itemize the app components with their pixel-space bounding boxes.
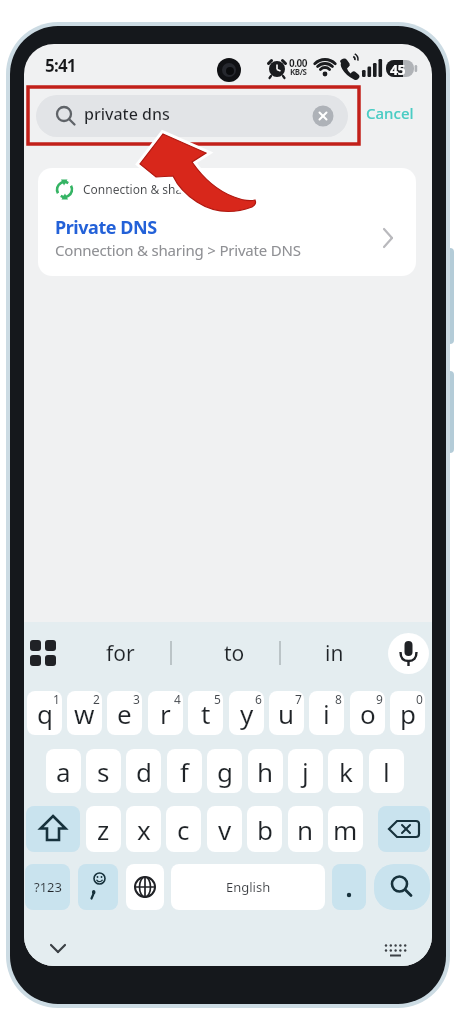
- staticText: Connection & sharing: [83, 181, 206, 197]
- staticText: KB/S: [290, 66, 307, 77]
- button[interactable]: s: [86, 749, 121, 793]
- button[interactable]: h: [248, 749, 283, 793]
- button[interactable]: i: [309, 691, 344, 735]
- button[interactable]: [78, 864, 118, 910]
- staticText: q: [37, 696, 53, 731]
- button[interactable]: in: [299, 631, 369, 675]
- staticText: d: [136, 754, 152, 789]
- button[interactable]: t: [188, 691, 223, 735]
- staticText: s: [97, 754, 110, 789]
- button[interactable]: q: [27, 691, 62, 735]
- staticText: 5: [214, 691, 221, 707]
- staticText: w: [74, 696, 95, 731]
- button[interactable]: o: [350, 691, 385, 735]
- staticText: 5:41: [45, 54, 76, 77]
- button[interactable]: x: [126, 806, 161, 852]
- button[interactable]: j: [288, 749, 323, 793]
- button[interactable]: to: [199, 631, 269, 675]
- staticText: ?123: [34, 878, 62, 896]
- staticText: 45: [390, 60, 406, 79]
- staticText: English: [226, 878, 271, 896]
- staticText: 6: [255, 691, 262, 707]
- button[interactable]: y: [229, 691, 264, 735]
- staticText: v: [218, 812, 232, 847]
- staticText: n: [297, 812, 314, 847]
- button[interactable]: u: [269, 691, 304, 735]
- staticText: r: [160, 696, 171, 731]
- staticText: to: [224, 639, 245, 668]
- button[interactable]: r: [148, 691, 183, 735]
- button[interactable]: l: [369, 749, 404, 793]
- button[interactable]: [332, 864, 366, 910]
- staticText: 9: [376, 691, 383, 707]
- staticText: in: [325, 639, 344, 668]
- button[interactable]: n: [288, 806, 323, 852]
- staticText: private dns: [84, 103, 170, 125]
- button[interactable]: c: [166, 806, 201, 852]
- staticText: t: [201, 696, 211, 731]
- button[interactable]: m: [328, 806, 363, 852]
- button[interactable]: f: [167, 749, 202, 793]
- staticText: z: [97, 812, 110, 847]
- staticText: Connection & sharing > Private DNS: [55, 240, 301, 260]
- button[interactable]: Cancel: [362, 100, 424, 132]
- button[interactable]: w: [67, 691, 102, 735]
- staticText: Private DNS: [55, 215, 157, 240]
- staticText: p: [400, 696, 416, 731]
- button[interactable]: for: [85, 631, 155, 675]
- button[interactable]: a: [46, 749, 81, 793]
- staticText: Cancel: [366, 103, 414, 123]
- staticText: 0: [416, 691, 423, 707]
- staticText: j: [302, 754, 309, 789]
- staticText: b: [257, 812, 273, 847]
- button[interactable]: [378, 806, 430, 852]
- button[interactable]: [26, 806, 80, 852]
- staticText: o: [360, 696, 376, 731]
- button[interactable]: [388, 633, 429, 674]
- staticText: 0.00: [289, 56, 307, 70]
- staticText: l: [383, 754, 390, 789]
- button[interactable]: Connection & sharing: [38, 168, 416, 276]
- staticText: f: [180, 754, 189, 789]
- button[interactable]: e: [107, 691, 142, 735]
- staticText: 8: [335, 691, 342, 707]
- staticText: for: [106, 639, 135, 668]
- button[interactable]: b: [247, 806, 282, 852]
- staticText: m: [333, 812, 358, 847]
- button[interactable]: g: [207, 749, 242, 793]
- staticText: c: [177, 812, 190, 847]
- staticText: 3: [133, 691, 140, 707]
- button[interactable]: ?123: [25, 864, 70, 910]
- staticText: 7: [295, 691, 302, 707]
- button[interactable]: p: [390, 691, 425, 735]
- button[interactable]: English: [171, 864, 325, 910]
- staticText: g: [217, 754, 233, 789]
- button[interactable]: k: [328, 749, 363, 793]
- button[interactable]: [126, 864, 164, 910]
- button[interactable]: [28, 638, 58, 668]
- button[interactable]: private dns: [36, 95, 348, 137]
- staticText: 4: [174, 691, 181, 707]
- staticText: x: [137, 812, 151, 847]
- staticText: 2: [93, 691, 100, 707]
- staticText: h: [257, 754, 274, 789]
- button[interactable]: d: [126, 749, 161, 793]
- button[interactable]: v: [207, 806, 242, 852]
- button[interactable]: [374, 864, 430, 910]
- staticText: y: [240, 696, 254, 731]
- button[interactable]: z: [86, 806, 121, 852]
- staticText: e: [117, 696, 132, 731]
- staticText: a: [56, 754, 71, 789]
- staticText: i: [323, 696, 330, 731]
- staticText: 1: [53, 691, 60, 707]
- staticText: k: [339, 754, 353, 789]
- staticText: u: [278, 696, 295, 731]
